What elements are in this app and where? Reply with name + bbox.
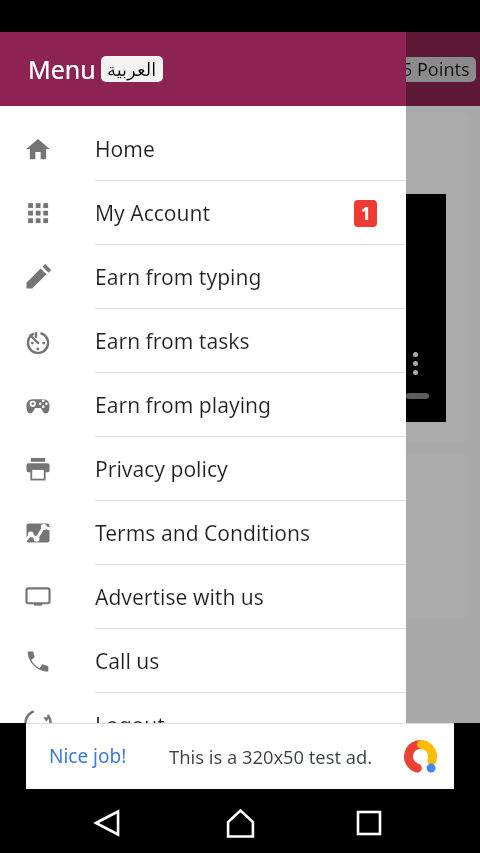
button[interactable]: Call us	[0, 629, 406, 693]
button[interactable]: Logout	[0, 693, 406, 757]
button[interactable]: Privacy policy	[0, 437, 406, 501]
staticText: Advertise with us	[95, 583, 264, 612]
button[interactable]: 5 Points	[400, 57, 476, 82]
button[interactable]: Home	[216, 799, 264, 847]
staticText: Earn from tasks	[95, 327, 250, 356]
staticText: Earn from playing	[95, 391, 271, 420]
button[interactable]: Back	[83, 799, 131, 847]
button[interactable]: My Account	[0, 181, 406, 245]
button[interactable]: Earn from tasks	[0, 309, 406, 373]
button[interactable]: Earn from playing	[0, 373, 406, 437]
button[interactable]: Terms and Conditions	[0, 501, 406, 565]
button[interactable]: Home	[0, 117, 406, 181]
staticText: Logout	[95, 711, 165, 740]
staticText: Home	[95, 135, 155, 164]
button[interactable]: Recents	[345, 799, 393, 847]
button[interactable]: العربية	[101, 56, 163, 82]
staticText: 5 Points	[402, 57, 470, 82]
staticText: Privacy policy	[95, 455, 228, 484]
button[interactable]: Nice job!	[26, 723, 454, 789]
staticText: Call us	[95, 647, 160, 676]
button[interactable]: Advertise with us	[0, 565, 406, 629]
staticText: My Account	[95, 199, 211, 228]
staticText: Terms and Conditions	[95, 519, 311, 548]
button[interactable]: Earn from typing	[0, 245, 406, 309]
staticText: Menu	[28, 52, 96, 86]
staticText: العربية	[107, 59, 157, 80]
staticText: Nice job!	[49, 743, 127, 769]
staticText: This is a 320x50 test ad.	[169, 744, 373, 769]
staticText: Earn from typing	[95, 263, 262, 292]
staticText: 1	[361, 202, 371, 225]
